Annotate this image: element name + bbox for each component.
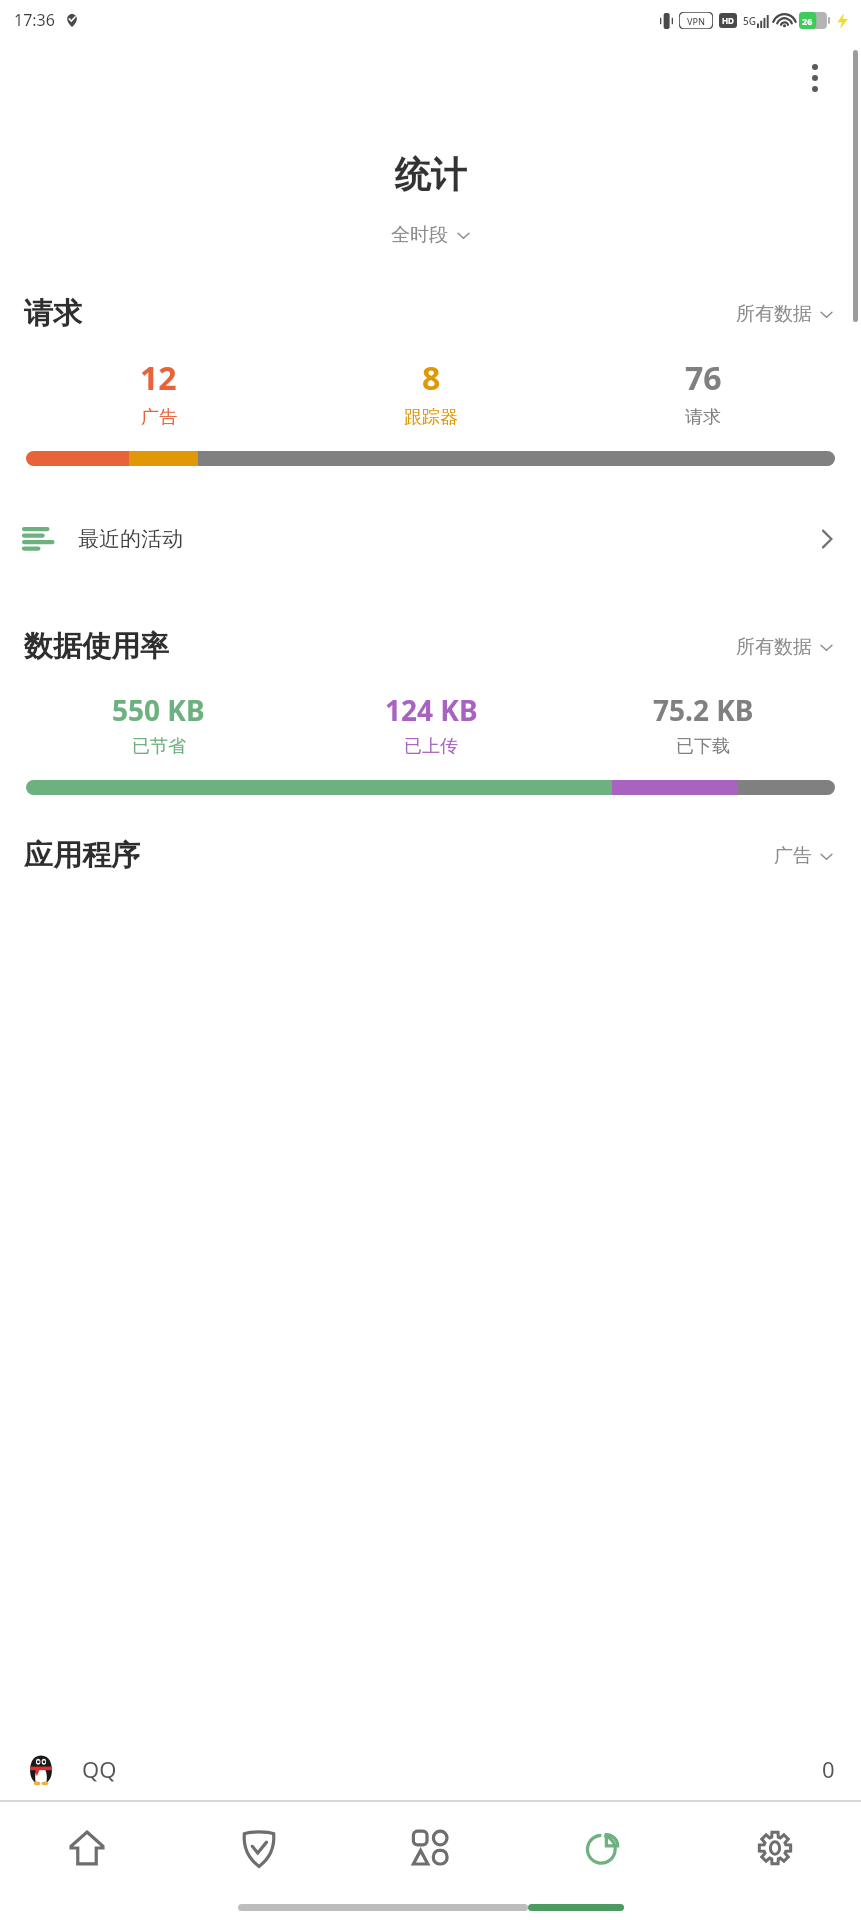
- button[interactable]: 所有数据: [732, 629, 837, 665]
- staticText: 全时段: [391, 223, 448, 247]
- button[interactable]: 全时段: [385, 219, 476, 251]
- staticText: 75.2 KB: [653, 691, 754, 729]
- button[interactable]: Apps: [345, 1802, 517, 1894]
- staticText: 8: [422, 356, 441, 400]
- staticText: 所有数据: [736, 635, 812, 659]
- staticText: 已节省: [132, 735, 186, 758]
- staticText: VPN: [687, 15, 706, 27]
- staticText: 5G: [743, 14, 756, 28]
- button[interactable]: Home: [0, 1802, 173, 1894]
- staticText: 550 KB: [112, 691, 205, 729]
- button[interactable]: QQ: [0, 1738, 861, 1800]
- staticText: 最近的活动: [78, 526, 183, 552]
- button[interactable]: 所有数据: [732, 296, 837, 332]
- button[interactable]: Settings: [689, 1802, 861, 1894]
- button[interactable]: Protection: [173, 1802, 345, 1894]
- staticText: 统计: [0, 152, 861, 197]
- button[interactable]: More options: [789, 52, 841, 104]
- staticText: QQ: [82, 1754, 117, 1784]
- staticText: 17:36: [14, 9, 55, 31]
- button[interactable]: 最近的活动: [0, 506, 861, 572]
- staticText: 请求: [685, 406, 721, 429]
- staticText: 跟踪器: [404, 406, 458, 429]
- staticText: 所有数据: [736, 302, 812, 326]
- staticText: 0: [822, 1754, 835, 1784]
- staticText: 已上传: [404, 735, 458, 758]
- staticText: 广告: [774, 844, 812, 868]
- button[interactable]: 广告: [770, 838, 837, 874]
- staticText: 26: [802, 15, 813, 27]
- staticText: 数据使用率: [24, 628, 169, 665]
- staticText: HD: [722, 15, 734, 26]
- staticText: 12: [140, 356, 177, 400]
- staticText: 124 KB: [385, 691, 478, 729]
- button[interactable]: Statistics: [517, 1802, 689, 1894]
- staticText: 请求: [24, 295, 82, 332]
- staticText: 76: [685, 356, 722, 400]
- staticText: 应用程序: [24, 837, 140, 874]
- staticText: 广告: [141, 406, 177, 429]
- staticText: 已下载: [676, 735, 730, 758]
